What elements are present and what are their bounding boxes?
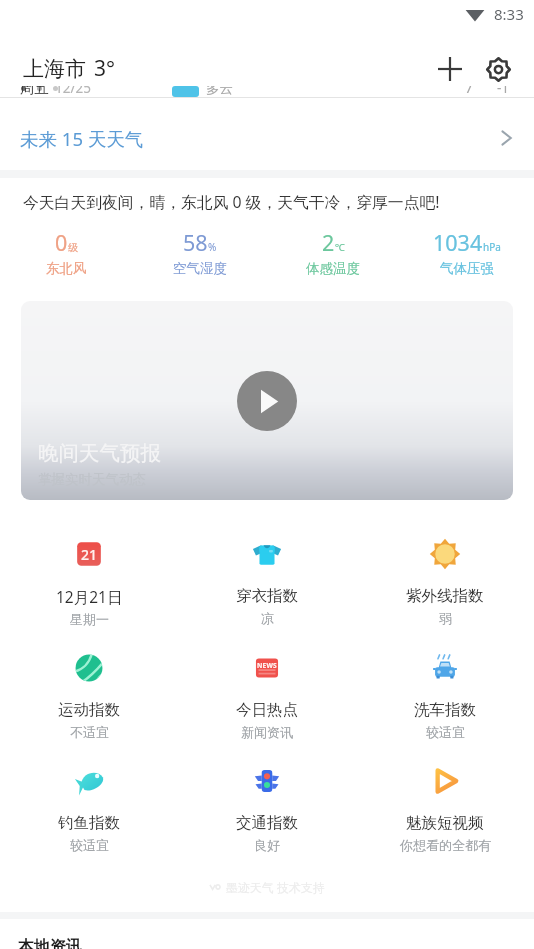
staticText: 掌握实时天气动态 <box>38 471 146 488</box>
button[interactable]: 运动指数 <box>0 652 178 740</box>
staticText: % <box>208 240 217 254</box>
staticText: -1 <box>497 79 510 97</box>
staticText: 2 <box>322 228 335 257</box>
staticText: 0 <box>55 228 68 257</box>
button[interactable]: 洗车指数 <box>356 652 534 740</box>
staticText: ℃ <box>335 240 345 254</box>
staticText: 凉 <box>261 610 274 626</box>
staticText: 新闻资讯 <box>241 724 293 740</box>
staticText: 东北风 <box>46 260 87 277</box>
staticText: 穿衣指数 <box>236 586 298 606</box>
staticText: 7 <box>465 79 473 97</box>
staticText: 较适宜 <box>70 837 109 853</box>
button[interactable]: 21 <box>0 538 178 627</box>
button[interactable]: NEWS <box>178 652 356 740</box>
staticText: 周五 <box>20 79 49 97</box>
staticText: 钓鱼指数 <box>58 813 120 833</box>
staticText: 晚间天气预报 <box>38 440 161 466</box>
staticText: 本地资讯 <box>18 937 82 949</box>
staticText: 空气湿度 <box>173 260 227 277</box>
staticText: 上海市 <box>23 56 86 82</box>
staticText: 你想看的全都有 <box>400 837 491 853</box>
staticText: 交通指数 <box>236 813 298 833</box>
staticText: 魅族短视频 <box>406 813 484 833</box>
staticText: 未来 15 天天气 <box>20 126 144 151</box>
staticText: 气体压强 <box>440 260 494 277</box>
staticText: 21 <box>81 545 98 564</box>
staticText: 58 <box>183 228 208 257</box>
button[interactable]: 紫外线指数 <box>356 538 534 626</box>
staticText: 体感温度 <box>306 260 360 277</box>
staticText: 不适宜 <box>70 724 109 740</box>
staticText: 今天白天到夜间，晴，东北风 0 级，天气干冷，穿厚一点吧! <box>23 191 440 213</box>
staticText: 多云 <box>206 80 233 97</box>
button[interactable]: 穿衣指数 <box>178 538 356 626</box>
button[interactable]: 交通指数 <box>178 765 356 853</box>
staticText: 3° <box>94 54 115 83</box>
staticText: 墨迹天气 技术支持 <box>226 879 326 895</box>
staticText: 级 <box>68 241 78 254</box>
button[interactable]: Settings <box>474 45 522 93</box>
staticText: 1034 <box>433 228 483 257</box>
staticText: hPa <box>483 240 501 254</box>
staticText: 星期一 <box>70 611 109 627</box>
button[interactable]: Add city <box>426 45 474 93</box>
staticText: 洗车指数 <box>414 700 476 720</box>
staticText: 12/25 <box>55 79 91 97</box>
staticText: 良好 <box>254 837 280 853</box>
staticText: 12月21日 <box>56 586 123 607</box>
staticText: 较适宜 <box>426 724 465 740</box>
button[interactable]: 魅族短视频 <box>356 765 534 853</box>
staticText: 今日热点 <box>236 700 298 720</box>
staticText: NEWS <box>257 661 277 670</box>
button[interactable]: 钓鱼指数 <box>0 765 178 853</box>
staticText: 运动指数 <box>58 700 120 720</box>
button[interactable]: 晚间天气预报 <box>21 301 513 500</box>
staticText: 8:33 <box>494 4 524 24</box>
button[interactable]: 未来 15 天天气 <box>0 98 534 170</box>
staticText: 弱 <box>439 610 452 626</box>
staticText: 紫外线指数 <box>406 586 484 606</box>
